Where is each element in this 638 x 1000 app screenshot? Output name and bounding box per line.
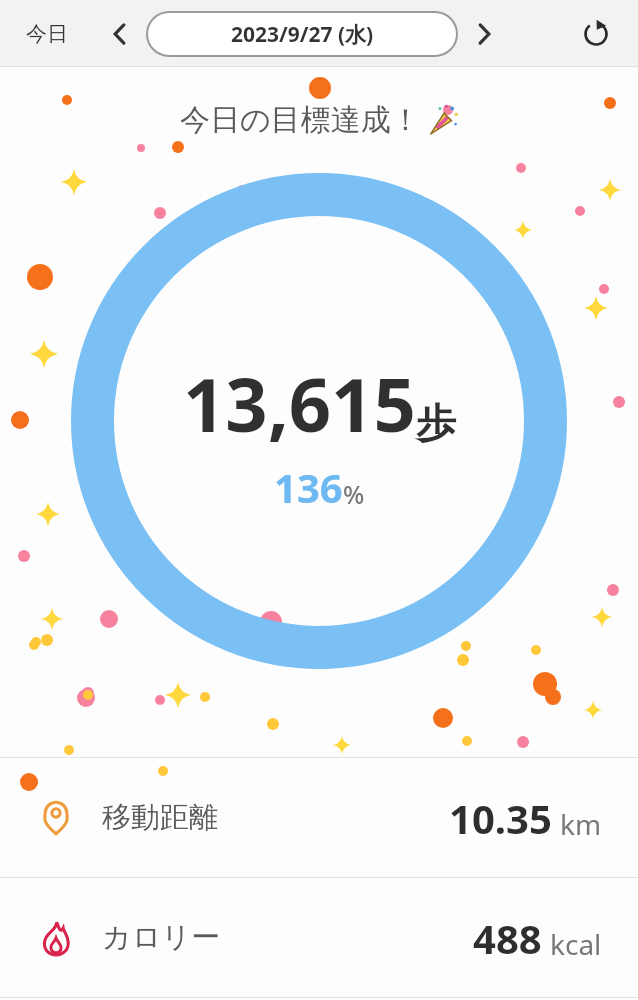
- staticText: 今日: [26, 21, 68, 47]
- button[interactable]: 今日: [20, 15, 74, 53]
- staticText: 136: [274, 460, 343, 514]
- button[interactable]: Refresh: [574, 12, 618, 56]
- staticText: 10.35: [449, 791, 552, 845]
- button[interactable]: 移動距離: [0, 758, 638, 877]
- button[interactable]: 2023/9/27 (水): [146, 11, 458, 57]
- button[interactable]: Previous day: [100, 14, 140, 54]
- staticText: 2023/9/27 (水): [231, 20, 374, 49]
- staticText: kcal: [550, 925, 602, 963]
- button[interactable]: Next day: [464, 14, 504, 54]
- staticText: 13,615: [183, 353, 416, 454]
- staticText: 今日の目標達成！: [180, 101, 421, 139]
- staticText: 歩: [416, 398, 456, 448]
- button[interactable]: カロリー: [0, 878, 638, 997]
- staticText: 移動距離: [102, 799, 218, 836]
- staticText: %: [343, 477, 365, 511]
- staticText: 488: [473, 911, 542, 965]
- staticText: km: [560, 805, 602, 843]
- staticText: カロリー: [102, 919, 221, 956]
